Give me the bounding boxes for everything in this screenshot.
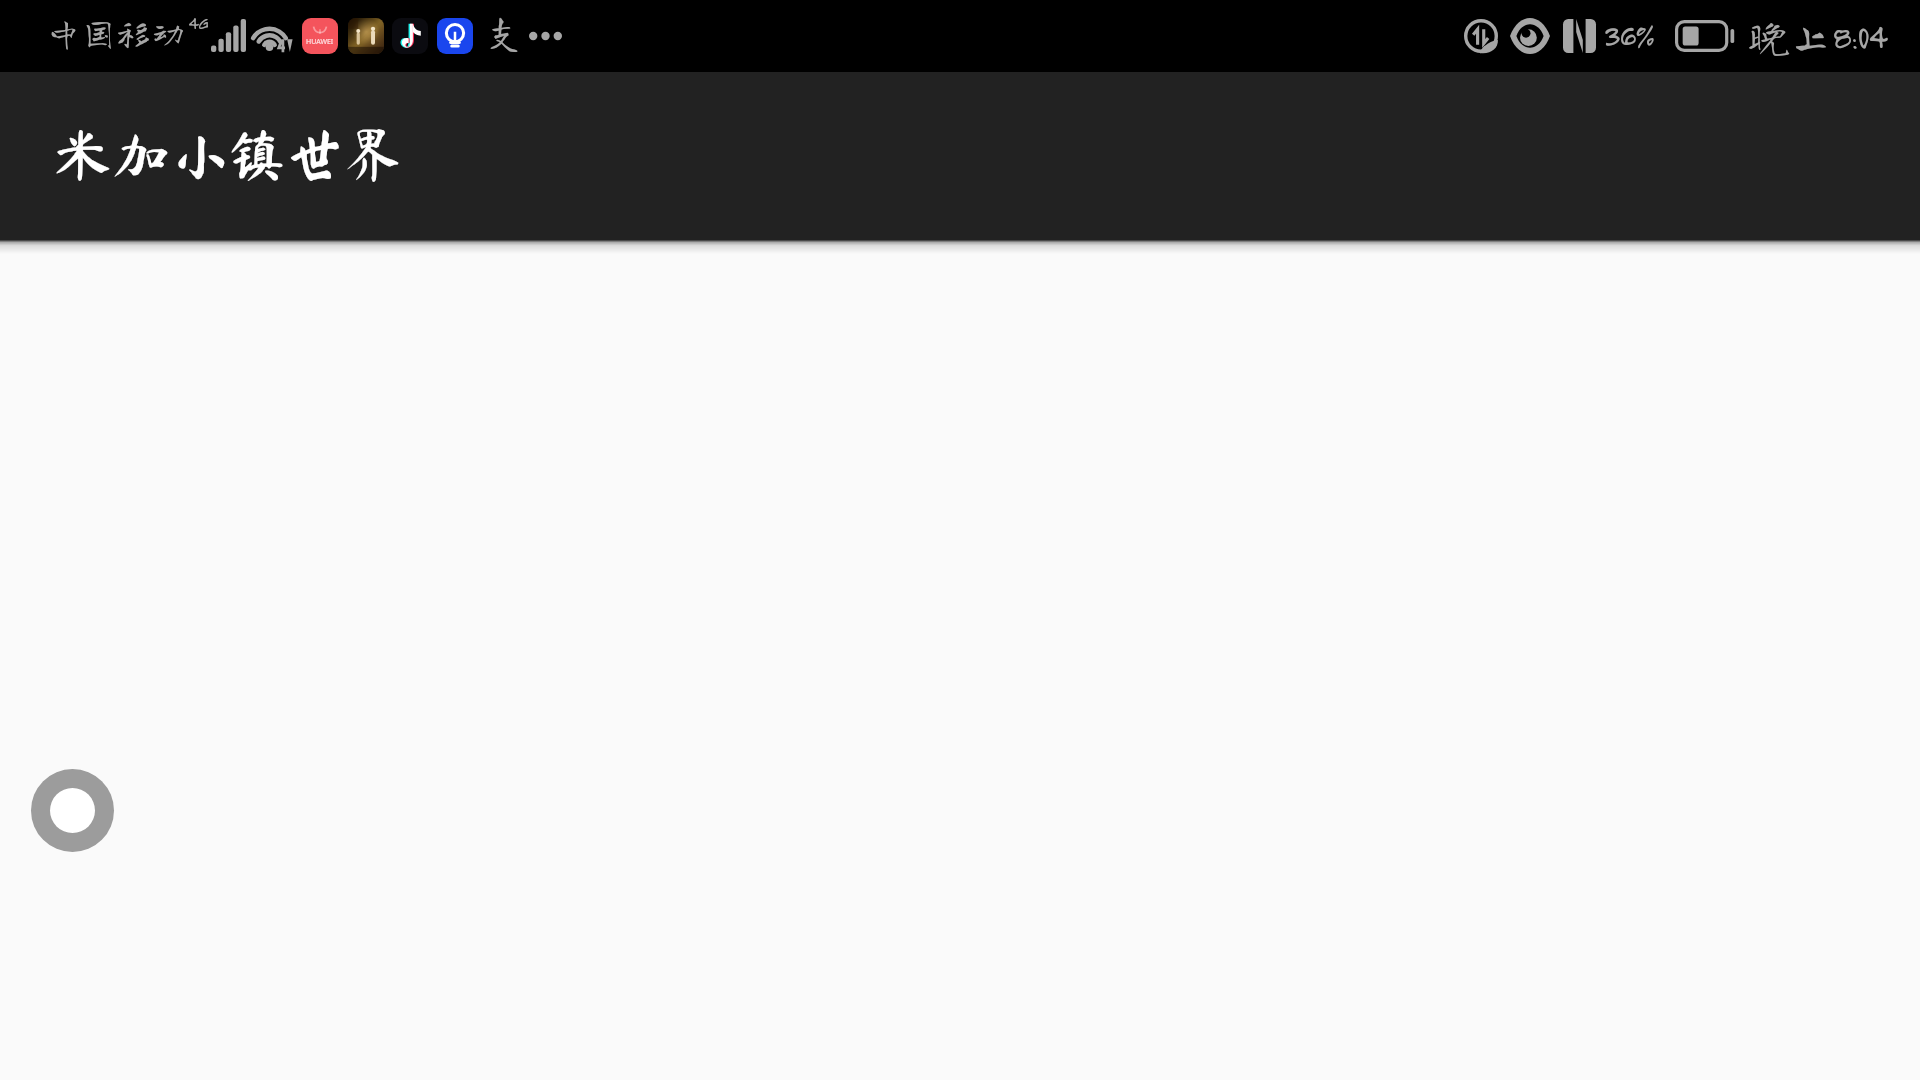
staticText: 晚上8:04 [1748, 15, 1886, 57]
other: Mobile signal strength [211, 19, 246, 52]
staticText: HUAWEI [306, 37, 334, 47]
other: TikTok notification [392, 18, 428, 54]
other: Power saving mode [1464, 19, 1498, 53]
other: Eye comfort mode [1510, 22, 1550, 50]
button[interactable]: 米加小镇世界 [0, 72, 1920, 240]
other: Battery 36 percent [1675, 20, 1737, 52]
other: NFC enabled [1563, 19, 1596, 53]
other: More notifications [529, 31, 562, 41]
staticText: 4G [188, 11, 209, 34]
staticText: 支 [485, 13, 524, 51]
staticText: 36% [1603, 16, 1654, 56]
other: Huawei notification [302, 18, 338, 54]
staticText: 中国移动 [46, 15, 187, 50]
other: Wi-Fi connected [251, 17, 293, 53]
staticText: 米加小镇世界 [54, 125, 403, 183]
other: Smart assistant notification [437, 18, 473, 54]
other: Game notification [348, 18, 384, 54]
